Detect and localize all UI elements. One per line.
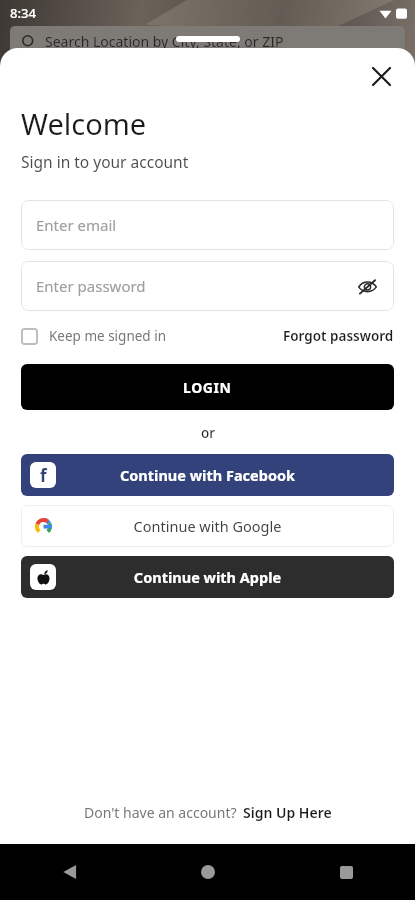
- button[interactable]: Sign Up Here: [243, 803, 332, 822]
- button[interactable]: Back: [0, 844, 139, 900]
- button[interactable]: f: [21, 454, 394, 496]
- staticText: Sign in to your account: [21, 151, 189, 172]
- button[interactable]: Enter email: [21, 200, 394, 250]
- button[interactable]: Home: [139, 844, 277, 900]
- staticText: Enter email: [36, 215, 117, 235]
- staticText: Enter password: [36, 276, 146, 296]
- button[interactable]: Recent apps: [277, 844, 415, 900]
- staticText: 8:34: [10, 4, 36, 22]
- staticText: or: [201, 424, 215, 442]
- staticText: f: [40, 464, 47, 487]
- staticText: Continue with Google: [21, 516, 394, 536]
- button[interactable]: Show password: [350, 269, 384, 303]
- button[interactable]: Keep me signed in: [21, 327, 166, 345]
- staticText: Forgot password: [283, 327, 394, 345]
- staticText: Search Location by City, State, or ZIP: [45, 32, 284, 51]
- button[interactable]: Close: [359, 54, 403, 98]
- staticText: Keep me signed in: [49, 327, 166, 345]
- button[interactable]: Continue with Google: [21, 505, 394, 547]
- button[interactable]: Enter password: [21, 261, 394, 311]
- staticText: Don't have an account?: [84, 803, 237, 822]
- staticText: LOGIN: [183, 378, 232, 397]
- button[interactable]: Continue with Apple: [21, 556, 394, 598]
- staticText: Continue with Apple: [21, 567, 394, 587]
- button[interactable]: Forgot password: [283, 327, 394, 345]
- button[interactable]: LOGIN: [21, 364, 394, 410]
- staticText: Sign Up Here: [243, 803, 332, 822]
- staticText: Welcome: [21, 104, 147, 143]
- staticText: Continue with Facebook: [21, 465, 394, 485]
